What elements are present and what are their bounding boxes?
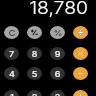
staticText: 4 [9,69,15,79]
button[interactable]: Plus [73,90,88,96]
button[interactable]: Eight [27,47,42,60]
staticText: 1 [10,92,14,96]
button[interactable]: Four [4,67,19,80]
staticText: 3 [55,92,60,96]
staticText: 6 [55,69,60,79]
button[interactable]: Plus minus [27,26,42,39]
staticText: 5 [32,69,37,79]
button[interactable]: Five [27,67,42,80]
button[interactable]: Nine [50,47,65,60]
button[interactable]: Divide [73,26,88,39]
button[interactable]: Percent [50,26,65,39]
button[interactable]: Six [50,67,65,80]
staticText: C [9,28,15,38]
button[interactable]: Minus [73,67,88,80]
button[interactable]: Multiply [73,47,88,60]
staticText: 9 [55,49,60,59]
button[interactable]: One [4,90,19,96]
staticText: 2 [32,92,37,96]
button[interactable]: Clear [4,26,19,39]
staticText: 7 [9,49,14,59]
button[interactable]: Three [50,90,65,96]
button[interactable]: Two [27,90,42,96]
staticText: % [53,28,62,38]
button[interactable]: Seven [4,47,19,60]
staticText: 8 [32,49,37,59]
staticText: 18,780 [0,0,88,19]
